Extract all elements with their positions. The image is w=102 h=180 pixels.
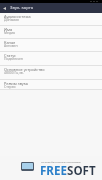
staticText: FREE	[40, 163, 67, 179]
staticText: Лучшие бесплатные программы	[41, 160, 81, 163]
staticText: SOFT	[67, 163, 96, 179]
staticText: Звук. карта	[10, 5, 34, 11]
staticText: Медиа	[4, 30, 15, 35]
button[interactable]: Back	[0, 3, 9, 13]
button[interactable]: Имя	[0, 26, 102, 39]
staticText: Режим звука	[4, 81, 28, 86]
button[interactable]: Режим звука	[0, 80, 102, 90]
staticText: Статус	[4, 53, 17, 58]
staticText: Основное устройство	[4, 67, 45, 72]
staticText: Динамик	[4, 17, 20, 22]
staticText: Канал	[4, 40, 16, 45]
staticText: 48000 Гц зв.	[4, 70, 24, 75]
staticText: Стерео	[4, 84, 16, 89]
staticText: Активен	[4, 43, 18, 48]
button[interactable]: Основное устройство	[0, 66, 102, 80]
button[interactable]: Статус	[0, 52, 102, 66]
button[interactable]: Канал	[0, 39, 102, 52]
staticText: Аудиосистема	[4, 14, 31, 19]
staticText: Подключен	[4, 56, 23, 61]
staticText: Имя	[4, 27, 13, 32]
button[interactable]: Аудиосистема	[0, 13, 102, 26]
